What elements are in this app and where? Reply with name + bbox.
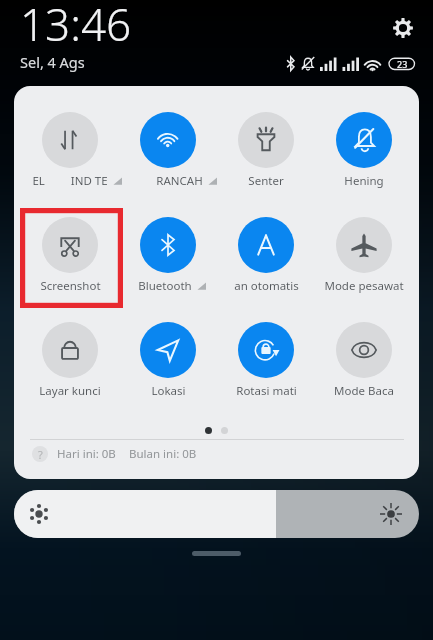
button[interactable]: EL IND TE [24,112,116,189]
button[interactable]: Mode pesawat [318,217,410,294]
staticText: Mode Baca [334,383,394,399]
staticText: an otomatis [234,278,299,294]
button[interactable]: an otomatis [220,217,312,294]
staticText: ? [38,447,43,462]
staticText: Rotasi mati [236,383,297,399]
button[interactable]: Senter [220,112,312,189]
staticText: Senter [248,173,284,189]
button[interactable]: Hening [318,112,410,189]
staticText: Layar kunci [39,383,101,399]
button[interactable]: Settings [393,18,413,38]
staticText: 23 [397,58,408,70]
staticText: Hari ini: 0B [57,446,116,462]
staticText: Bulan ini: 0B [129,446,197,462]
staticText: Lokasi [151,383,186,399]
staticText: Hening [344,173,384,189]
staticText: 13:46 [20,0,132,54]
staticText: RANCAH [156,173,203,189]
button[interactable]: Layar kunci [24,322,116,399]
button[interactable]: Mode Baca [318,322,410,399]
button[interactable]: Screenshot [24,217,116,294]
staticText: Screenshot [40,278,101,294]
staticText: Mode pesawat [324,278,404,294]
button[interactable]: Bluetooth [122,217,214,294]
button[interactable] [14,490,419,538]
button[interactable]: Rotasi mati [220,322,312,399]
button[interactable]: Lokasi [122,322,214,399]
staticText: Bluetooth [138,278,192,294]
staticText: EL IND TE [32,173,108,189]
staticText: Sel, 4 Ags [20,52,85,72]
button[interactable]: RANCAH [122,112,214,189]
